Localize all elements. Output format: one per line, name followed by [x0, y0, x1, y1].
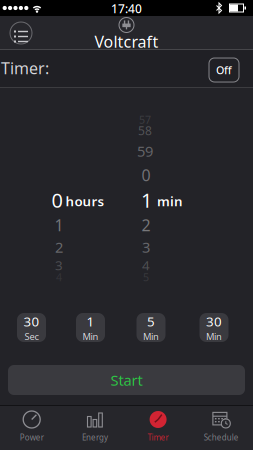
staticText: Timer:	[1, 57, 49, 79]
button[interactable]: 30	[17, 313, 46, 342]
button[interactable]: Off	[209, 58, 239, 82]
button[interactable]: 1	[76, 313, 105, 342]
staticText: 2	[55, 237, 63, 257]
staticText: 1	[86, 312, 94, 330]
staticText: Timer	[148, 432, 169, 443]
staticText: 4	[142, 256, 150, 274]
staticText: Min	[143, 330, 159, 343]
button[interactable]: Timer	[126, 406, 190, 450]
staticText: 1	[141, 187, 152, 213]
staticText: 57	[139, 112, 151, 127]
button[interactable]: Energy	[63, 406, 126, 450]
button[interactable]: Schedule	[190, 406, 253, 450]
button[interactable]: Power	[0, 406, 63, 450]
staticText: 3	[55, 256, 63, 274]
staticText: 3	[142, 237, 150, 257]
staticText: 0	[51, 187, 62, 213]
staticText: Min	[206, 330, 222, 343]
staticText: Start	[110, 370, 142, 390]
staticText: Schedule	[204, 432, 239, 443]
staticText: Min	[82, 330, 98, 343]
staticText: Voltcraft	[94, 31, 158, 52]
staticText: 5	[143, 270, 149, 284]
staticText: 59	[137, 141, 153, 161]
button[interactable]: Device list	[7, 19, 34, 46]
staticText: 30	[206, 312, 222, 330]
staticText: Sec	[24, 330, 38, 343]
staticText: Energy	[82, 432, 108, 443]
staticText: Off	[216, 63, 232, 77]
staticText: 58	[138, 122, 152, 138]
staticText: 5	[147, 312, 155, 330]
staticText: 30	[23, 312, 39, 330]
staticText: 17:40	[111, 0, 142, 16]
staticText: 4	[56, 270, 62, 284]
staticText: Power	[20, 432, 44, 443]
staticText: 1	[54, 214, 63, 236]
staticText: min	[157, 192, 183, 210]
button[interactable]: 5	[136, 313, 165, 342]
button[interactable]: 30	[199, 313, 228, 342]
staticText: hours	[65, 192, 104, 210]
staticText: 2	[141, 214, 150, 236]
staticText: 0	[141, 164, 150, 186]
button[interactable]: Start	[8, 365, 245, 395]
